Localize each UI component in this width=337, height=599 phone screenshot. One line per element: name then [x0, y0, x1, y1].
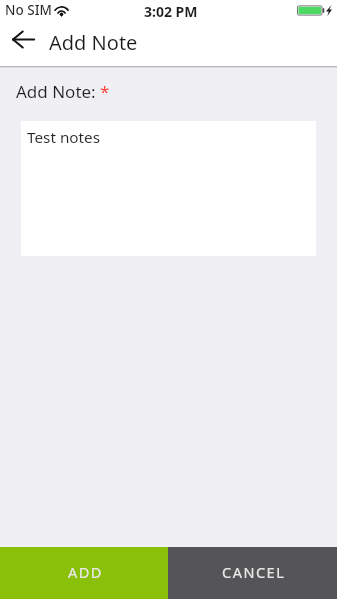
button[interactable]: CANCEL [168, 547, 337, 599]
button[interactable]: ADD [0, 547, 168, 599]
staticText: Add Note [49, 29, 138, 56]
button[interactable]: Back [0, 21, 46, 63]
staticText: ADD [68, 562, 103, 582]
staticText: Test notes [27, 127, 101, 148]
staticText: No SIM [5, 1, 52, 19]
staticText: Add Note: * [16, 80, 110, 103]
staticText: 3:02 PM [144, 2, 198, 21]
button[interactable]: Test notes [21, 121, 316, 256]
staticText: CANCEL [222, 562, 286, 582]
